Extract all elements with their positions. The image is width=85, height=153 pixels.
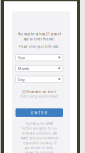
staticText: Day: [18, 77, 25, 82]
staticText: click if using a public device: [20, 95, 58, 98]
staticText: don't: [48, 90, 56, 94]
button[interactable]: Year: [15, 54, 63, 61]
staticText: Please enter your birth date.: [19, 45, 60, 48]
staticText: You must be at least 21 years of age to …: [18, 32, 61, 41]
button[interactable]: Month: [15, 65, 63, 72]
button[interactable]: ENTER: [15, 108, 63, 117]
staticText: ENTER: [31, 110, 47, 115]
staticText: By clicking the ENTER button you agree t…: [20, 122, 58, 153]
staticText: Month: [18, 66, 29, 71]
button[interactable]: Day: [15, 76, 63, 83]
staticText: Remember me: [26, 90, 46, 94]
staticText: Year: [18, 55, 26, 60]
button[interactable]: Remember me: [23, 90, 56, 94]
